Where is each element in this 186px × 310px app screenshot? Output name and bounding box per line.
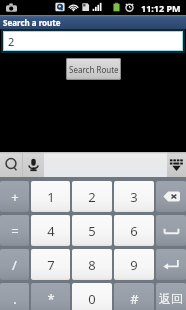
staticText: 7 (47, 256, 55, 274)
button[interactable] (156, 249, 186, 280)
button[interactable]: / (0, 249, 29, 280)
button[interactable]: * (31, 283, 70, 310)
button[interactable] (156, 181, 186, 212)
button[interactable] (156, 215, 186, 246)
staticText: Search Route (69, 64, 119, 75)
button[interactable]: 3 (114, 181, 154, 212)
button[interactable]: Hide keyboard (167, 152, 186, 177)
staticText: 返回 (159, 291, 183, 306)
staticText: 4 (47, 222, 55, 240)
button[interactable]: 2 (72, 181, 112, 212)
staticText: 1 (47, 188, 55, 206)
staticText: 9 (130, 256, 138, 274)
button[interactable]: 8 (72, 249, 112, 280)
button[interactable]: # (114, 283, 154, 310)
button[interactable]: 返回 (156, 283, 186, 310)
button[interactable]: + (0, 181, 29, 212)
staticText: . (13, 290, 17, 308)
button[interactable]: 4 (31, 215, 70, 246)
button[interactable]: 5 (72, 215, 112, 246)
button[interactable]: Search (0, 152, 22, 177)
staticText: 11:12 PM (141, 2, 181, 14)
staticText: 2 (88, 188, 96, 206)
staticText: 6 (130, 222, 138, 240)
staticText: Search a route (3, 17, 61, 28)
button[interactable]: 1 (31, 181, 70, 212)
button[interactable]: 2 (4, 32, 182, 50)
staticText: 0 (88, 290, 96, 308)
staticText: 2 (8, 34, 15, 49)
button[interactable]: 0 (72, 283, 112, 310)
button[interactable]: . (0, 283, 29, 310)
button[interactable]: 7 (31, 249, 70, 280)
staticText: * (47, 290, 55, 308)
button[interactable]: 9 (114, 249, 154, 280)
staticText: 8 (88, 256, 96, 274)
button[interactable]: Search Route (66, 58, 121, 80)
button[interactable]: = (0, 215, 29, 246)
button[interactable]: 6 (114, 215, 154, 246)
staticText: # (130, 290, 139, 308)
button[interactable]: Voice input (23, 152, 44, 177)
staticText: = (11, 222, 19, 240)
staticText: + (11, 188, 19, 206)
staticText: 3 (130, 188, 138, 206)
staticText: 5 (88, 222, 96, 240)
staticText: / (12, 256, 17, 274)
button[interactable] (44, 152, 167, 177)
